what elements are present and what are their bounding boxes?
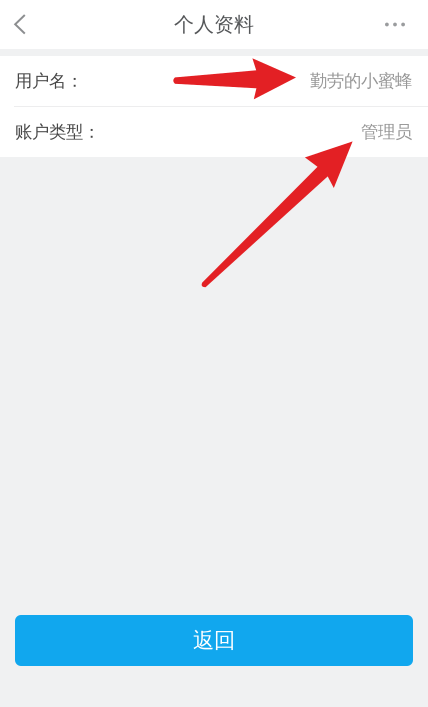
- staticText: 勤劳的小蜜蜂: [310, 70, 412, 92]
- staticText: 返回: [193, 627, 235, 654]
- staticText: 用户名：: [15, 70, 83, 92]
- button[interactable]: Back: [14, 0, 58, 49]
- button[interactable]: 返回: [15, 615, 413, 666]
- staticText: 个人资料: [174, 12, 254, 37]
- button[interactable]: 用户名：: [0, 56, 428, 106]
- staticText: 账户类型：: [15, 121, 100, 143]
- button[interactable]: 账户类型：: [0, 107, 428, 157]
- button[interactable]: More options: [361, 0, 405, 49]
- staticText: 管理员: [361, 121, 412, 143]
